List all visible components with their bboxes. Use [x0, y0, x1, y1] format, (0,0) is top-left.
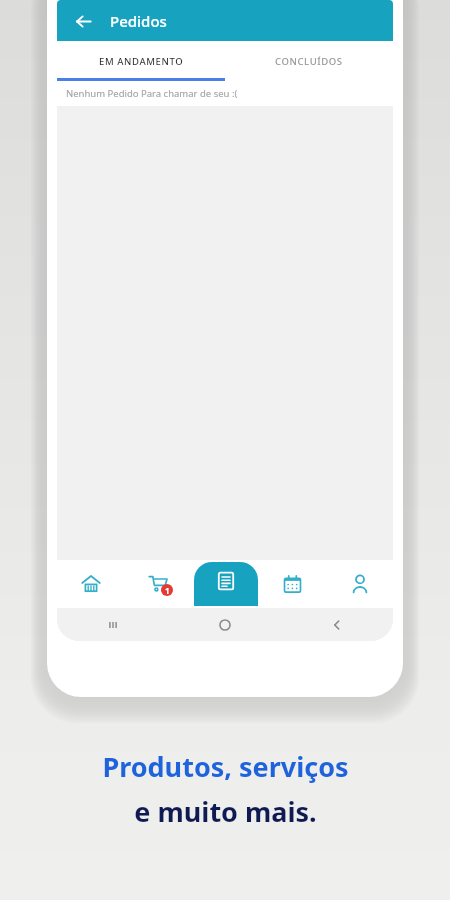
- staticText: 1: [165, 585, 170, 596]
- staticText: e muito mais.: [134, 793, 317, 830]
- staticText: Pedidos: [110, 11, 167, 31]
- staticText: EM ANDAMENTO: [99, 55, 184, 68]
- button[interactable]: CONCLUÍDOS: [225, 41, 393, 81]
- button[interactable]: Recents: [57, 608, 169, 641]
- button[interactable]: Calendar: [259, 560, 326, 608]
- button[interactable]: Home: [169, 608, 281, 641]
- button[interactable]: Home: [57, 560, 125, 608]
- staticText: CONCLUÍDOS: [275, 55, 343, 68]
- button[interactable]: Orders: [194, 562, 258, 606]
- button[interactable]: Back: [281, 608, 393, 641]
- staticText: Produtos, serviços: [102, 748, 349, 785]
- button[interactable]: Cart, 1 item: [125, 560, 192, 608]
- button[interactable]: EM ANDAMENTO: [57, 41, 225, 81]
- button[interactable]: Profile: [326, 560, 393, 608]
- button[interactable]: Back: [63, 1, 103, 41]
- staticText: Nenhum Pedido Para chamar de seu :(: [66, 87, 238, 100]
